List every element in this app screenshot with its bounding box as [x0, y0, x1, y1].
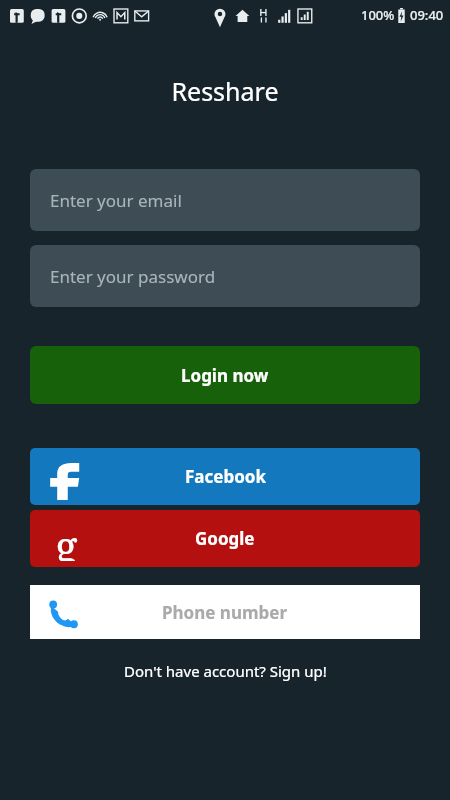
other: Google [44, 517, 88, 561]
other: Facebook [44, 455, 88, 499]
staticText: Phone number [162, 601, 288, 624]
staticText: 100% [361, 6, 395, 24]
staticText: Don't have account? Sign up! [124, 661, 327, 681]
button[interactable]: Enter your password [30, 245, 420, 307]
staticText: Login now [181, 364, 269, 387]
staticText: g [55, 517, 78, 561]
staticText: Enter your password [50, 265, 216, 288]
button[interactable]: Don't have account? Sign up! [116, 657, 335, 685]
staticText: 09:40 [410, 6, 444, 24]
button[interactable]: Login now [30, 346, 420, 404]
button[interactable]: Facebook [30, 448, 420, 505]
button[interactable]: Phone number [30, 585, 420, 639]
staticText: Resshare [171, 74, 279, 108]
staticText: Google [195, 527, 255, 550]
staticText: Enter your email [50, 189, 182, 212]
other: Phone number [44, 595, 78, 629]
staticText: Facebook [185, 465, 266, 488]
button[interactable]: Enter your email [30, 169, 420, 231]
button[interactable]: Google [30, 510, 420, 567]
